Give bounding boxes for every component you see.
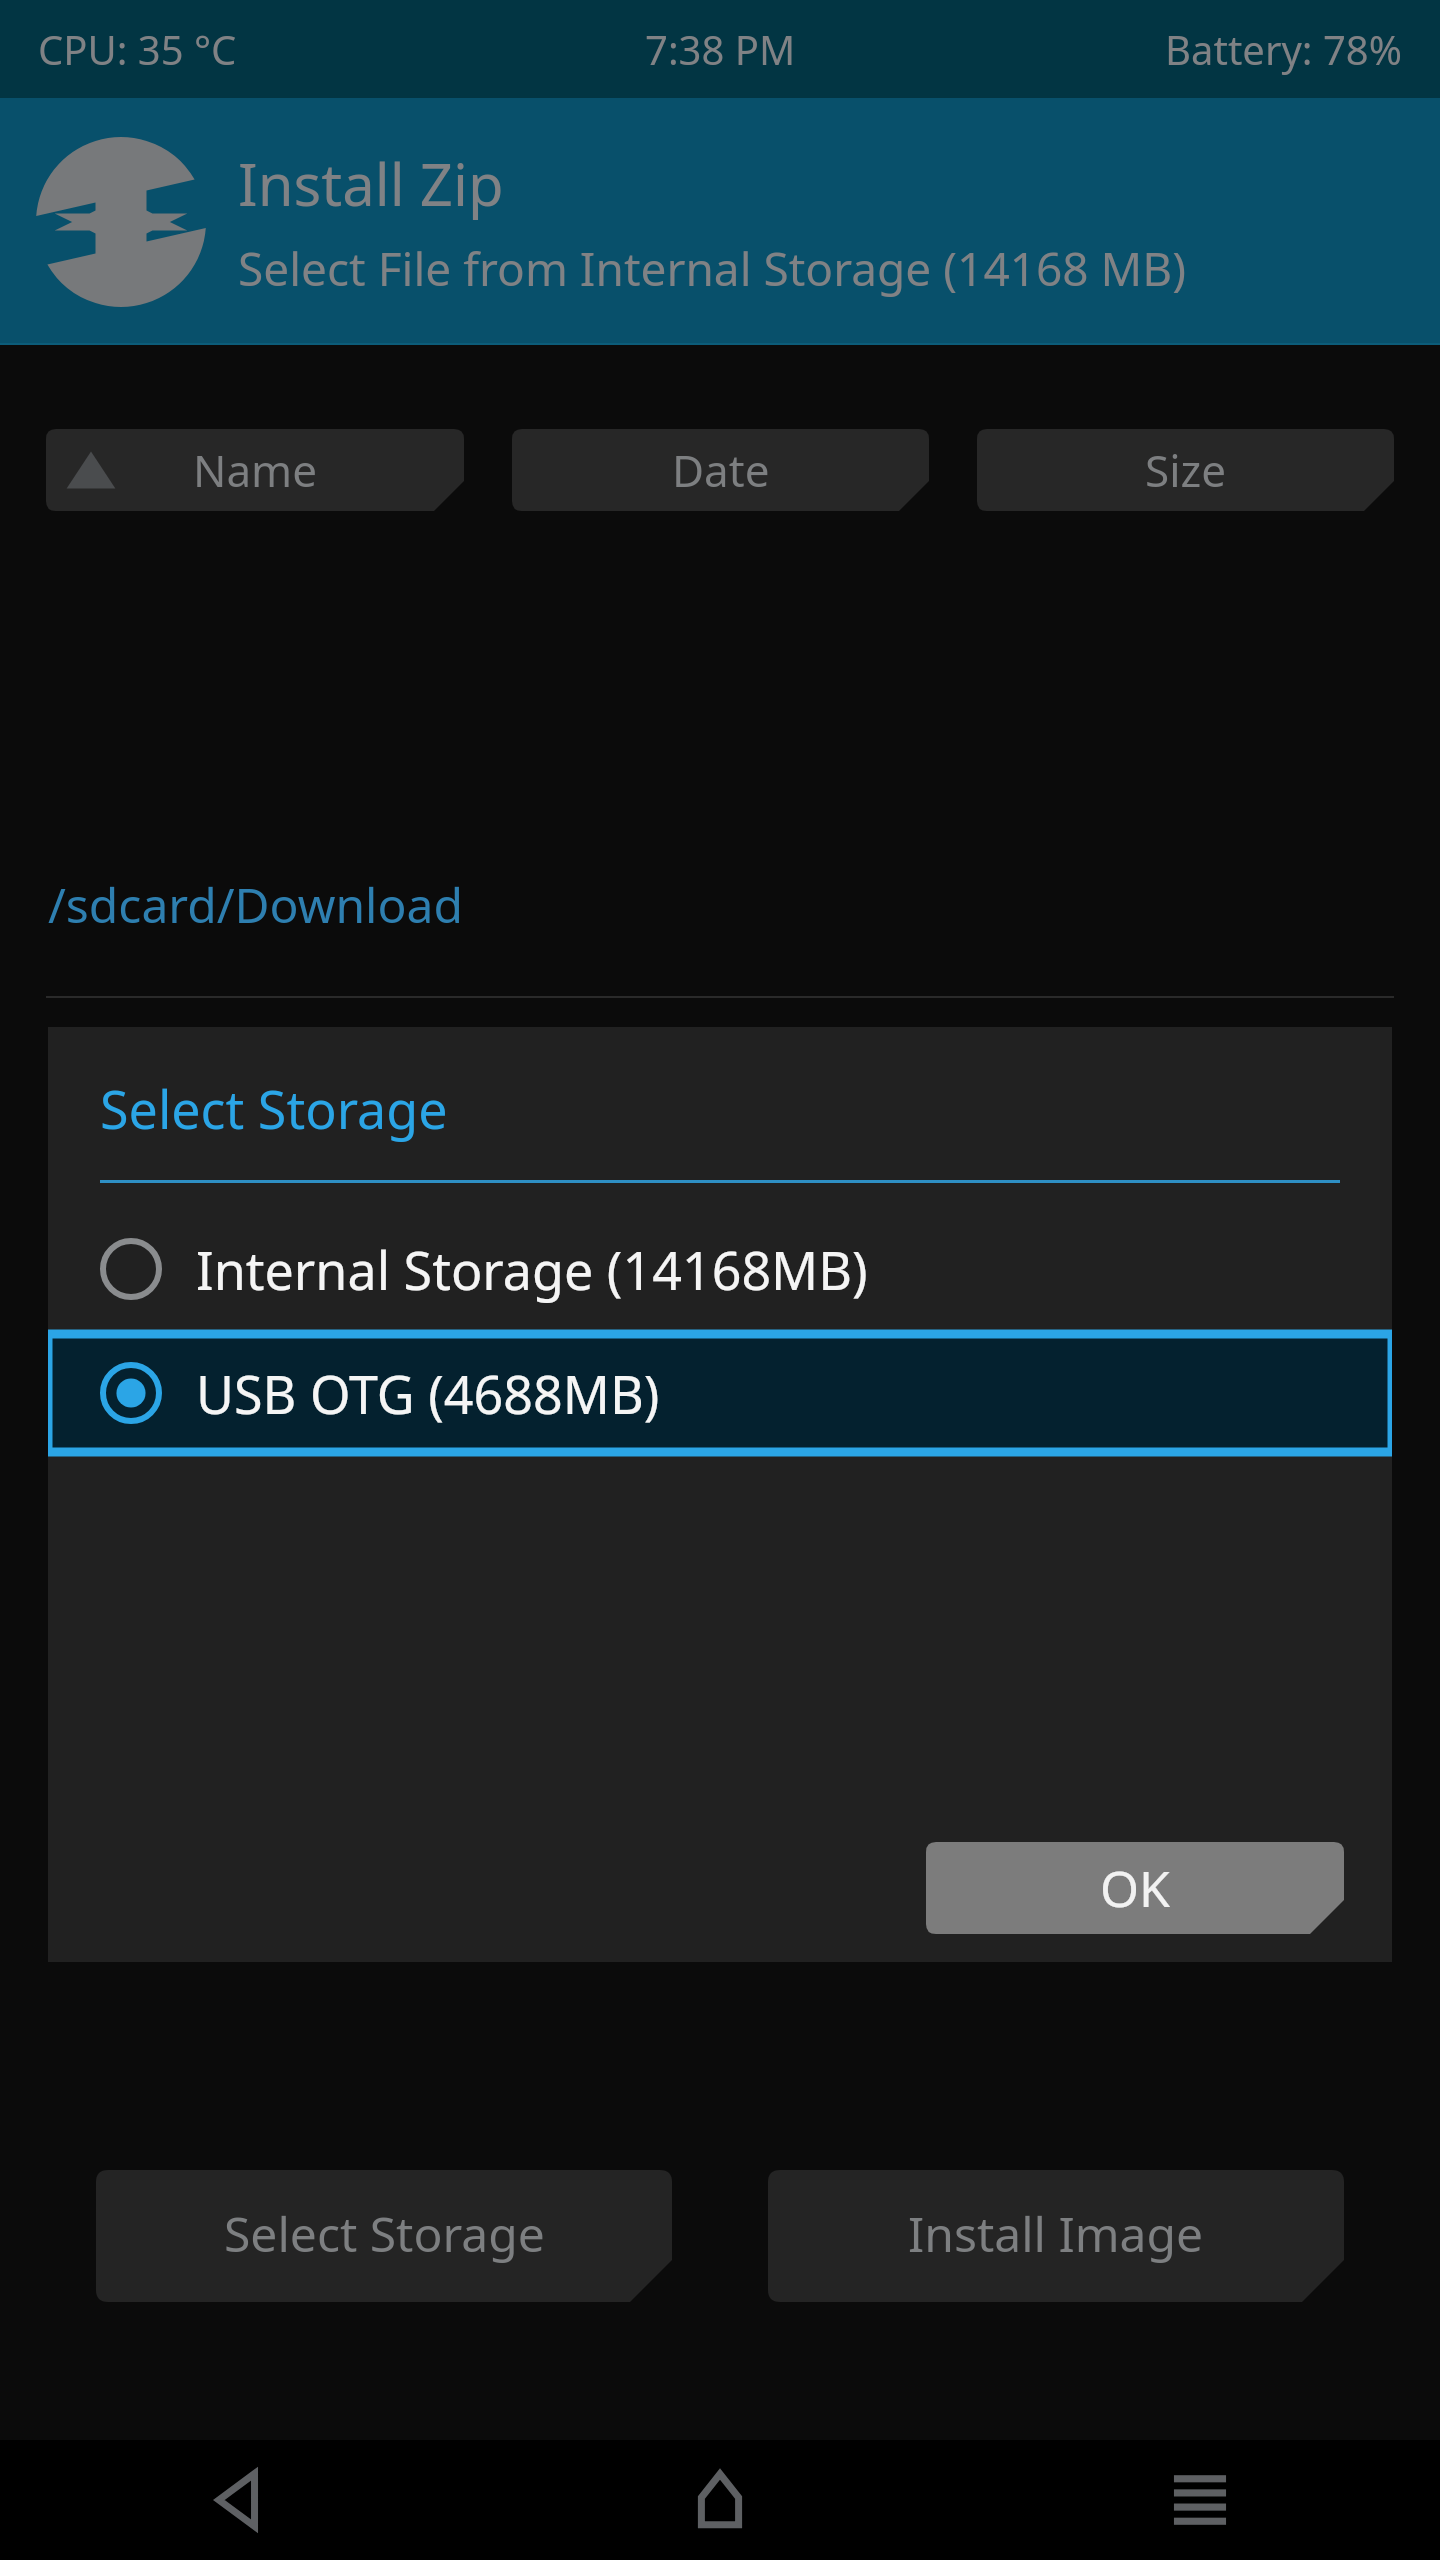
button[interactable]: Home xyxy=(480,2440,960,2560)
button[interactable]: Size xyxy=(977,429,1394,511)
staticText: Battery: 78% xyxy=(1165,22,1402,76)
button[interactable]: Install Image xyxy=(768,2170,1344,2302)
staticText: /sdcard/Download xyxy=(48,872,463,937)
staticText: Select Storage xyxy=(100,1073,448,1144)
staticText: USB OTG (4688MB) xyxy=(196,1358,660,1429)
button[interactable]: Back xyxy=(0,2440,480,2560)
staticText: Date xyxy=(672,440,770,500)
staticText: Select Storage xyxy=(224,2201,545,2266)
staticText: Size xyxy=(1145,440,1227,500)
staticText: Install Zip xyxy=(238,144,504,223)
button[interactable]: Name xyxy=(46,429,464,511)
button[interactable]: OK xyxy=(926,1842,1344,1934)
button[interactable]: Menu xyxy=(960,2440,1440,2560)
staticText: Select File from Internal Storage (14168… xyxy=(238,237,1187,300)
staticText: OK xyxy=(1100,1854,1170,1922)
staticText: Name xyxy=(193,440,318,500)
staticText: 7:38 PM xyxy=(645,22,796,76)
staticText: Internal Storage (14168MB) xyxy=(196,1234,868,1305)
button[interactable]: Date xyxy=(512,429,929,511)
button[interactable]: Internal Storage (14168MB) xyxy=(48,1207,1392,1331)
button[interactable]: USB OTG (4688MB) xyxy=(48,1331,1392,1455)
staticText: Install Image xyxy=(908,2201,1204,2266)
button[interactable]: Select Storage xyxy=(96,2170,672,2302)
staticText: CPU: 35 °C xyxy=(38,22,237,76)
